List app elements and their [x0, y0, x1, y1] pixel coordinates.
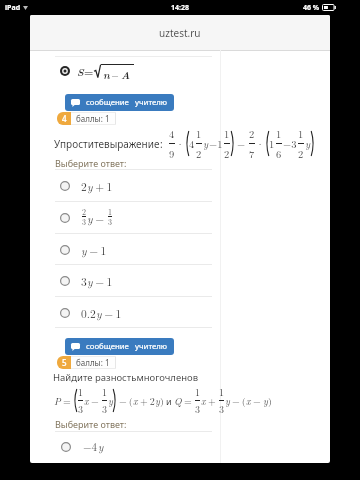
staticText: 0.2	[81, 305, 96, 321]
staticText: 4	[62, 113, 67, 124]
staticText: − (	[230, 394, 246, 408]
staticText: Найдите разностьмногочленов	[53, 371, 199, 384]
staticText: −	[93, 210, 107, 226]
staticText: =	[61, 394, 73, 408]
staticText: n	[103, 67, 110, 79]
staticText: y	[305, 136, 311, 151]
staticText: 9	[169, 146, 175, 161]
staticText: Выберите ответ:	[55, 157, 127, 169]
staticText: uztest.ru	[159, 26, 201, 40]
staticText: x	[246, 394, 251, 408]
staticText: y	[203, 136, 209, 151]
staticText: iPad	[5, 3, 21, 13]
button[interactable]: y	[55, 234, 212, 265]
button[interactable]: 0.2	[55, 297, 212, 328]
staticText: 3	[219, 402, 224, 416]
button[interactable]: сообщение	[65, 338, 174, 355]
staticText: 1	[276, 126, 282, 141]
staticText: 3	[82, 216, 86, 227]
staticText: −	[235, 136, 248, 151]
staticText: A	[121, 67, 131, 79]
staticText: 3	[108, 216, 112, 227]
staticText: + 1	[93, 178, 113, 194]
staticText: 2	[224, 146, 230, 161]
staticText: баллы: 1	[76, 357, 110, 368]
staticText: 1	[224, 126, 230, 141]
staticText: 2	[249, 126, 255, 141]
staticText: Выберите ответ:	[55, 418, 127, 430]
staticText: баллы: 1	[76, 113, 110, 124]
staticText: 3	[81, 273, 87, 289]
staticText: y	[263, 394, 268, 408]
staticText: учителю	[135, 97, 168, 108]
staticText: ·	[256, 136, 265, 151]
staticText: − 1	[93, 273, 113, 289]
staticText: 4	[169, 126, 175, 141]
staticText: y	[108, 394, 113, 408]
staticText: и	[166, 395, 172, 407]
staticText: Q	[174, 394, 182, 408]
button[interactable]: −4	[55, 432, 212, 462]
staticText: y	[98, 439, 104, 455]
staticText: =	[182, 394, 194, 408]
staticText: 2	[196, 146, 202, 161]
staticText: 5	[62, 357, 67, 368]
staticText: −4	[83, 439, 98, 455]
staticText: x	[84, 394, 89, 408]
staticText: 1	[269, 136, 275, 151]
button[interactable]: 2	[55, 202, 212, 233]
staticText: P	[54, 394, 61, 408]
button[interactable]: 2	[55, 170, 212, 201]
staticText: −3	[283, 136, 297, 151]
staticText: − (	[117, 394, 133, 408]
staticText: 1	[219, 385, 224, 399]
staticText: −	[89, 394, 101, 408]
staticText: x	[133, 394, 138, 408]
staticText: 1	[298, 126, 304, 141]
staticText: y	[87, 273, 93, 289]
staticText: −	[251, 394, 263, 408]
staticText: y	[96, 305, 102, 321]
staticText: 1	[102, 385, 107, 399]
staticText: 4	[189, 136, 195, 151]
staticText: 2	[81, 178, 87, 194]
staticText: +	[206, 394, 218, 408]
staticText: )	[160, 394, 164, 408]
staticText: выражение	[104, 137, 160, 151]
staticText: учителю	[135, 341, 168, 352]
staticText: 14:28	[171, 3, 189, 13]
button[interactable]: 3	[55, 265, 212, 296]
staticText: ·	[176, 136, 185, 151]
staticText: − 1	[102, 305, 122, 321]
staticText: 1	[195, 385, 200, 399]
staticText: y	[155, 394, 160, 408]
staticText: 2	[298, 146, 304, 161]
staticText: + 2	[138, 394, 155, 408]
staticText: =	[84, 64, 94, 79]
staticText: 1	[196, 126, 202, 141]
staticText: –	[110, 67, 121, 79]
staticText: 46 %	[303, 3, 320, 13]
staticText: − 1	[87, 242, 107, 258]
staticText: y	[81, 242, 87, 258]
staticText: 1	[78, 385, 83, 399]
staticText: 3	[195, 402, 200, 416]
staticText: 6	[276, 146, 282, 161]
staticText: :	[160, 137, 163, 151]
staticText: y	[87, 178, 93, 194]
staticText: Упростите	[54, 137, 104, 151]
staticText: 1	[108, 206, 112, 217]
staticText: x	[201, 394, 206, 408]
staticText: )	[268, 394, 272, 408]
staticText: сообщение	[86, 341, 129, 352]
staticText: 2	[82, 206, 86, 217]
button[interactable]: сообщение	[65, 94, 174, 111]
staticText: 7	[249, 146, 255, 161]
staticText: −1	[209, 136, 223, 151]
staticText: 3	[78, 402, 83, 416]
staticText: 3	[102, 402, 107, 416]
button[interactable]: S	[55, 60, 212, 82]
staticText: y	[87, 210, 93, 226]
staticText: y	[225, 394, 230, 408]
staticText: S	[77, 64, 84, 79]
